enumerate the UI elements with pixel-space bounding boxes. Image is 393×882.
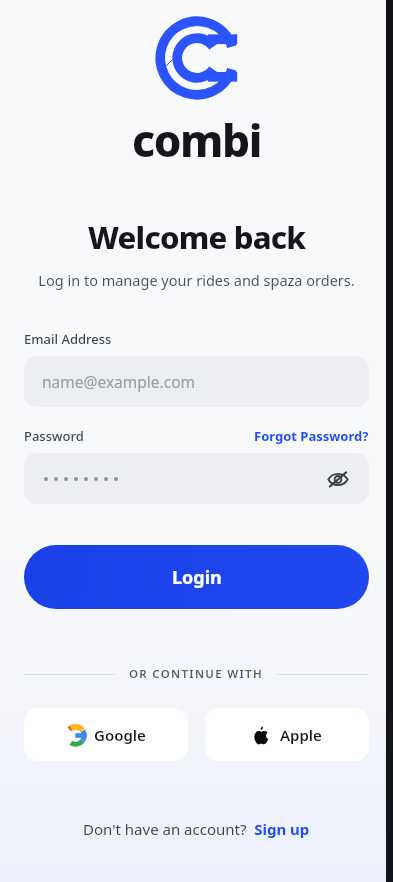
button[interactable]: Show password bbox=[24, 453, 369, 504]
staticText: Login bbox=[172, 565, 222, 590]
staticText: Email Address bbox=[24, 330, 112, 348]
staticText: Forgot Password? bbox=[254, 427, 369, 445]
staticText: OR CONTINUE WITH bbox=[129, 666, 263, 682]
button[interactable]: Don't have an account? Sign up bbox=[83, 819, 310, 839]
button[interactable]: Google bbox=[24, 708, 188, 761]
button[interactable]: name@example.com bbox=[24, 356, 369, 407]
staticText: combi bbox=[132, 110, 262, 170]
staticText: Welcome back bbox=[88, 216, 306, 258]
staticText: Apple bbox=[280, 725, 322, 745]
staticText: Password bbox=[24, 427, 84, 445]
button[interactable]: Apple bbox=[205, 708, 369, 761]
staticText: name@example.com bbox=[42, 371, 196, 392]
button[interactable]: Show password bbox=[321, 462, 355, 496]
button[interactable]: Login bbox=[24, 545, 369, 609]
button[interactable]: Forgot Password? bbox=[254, 427, 369, 445]
staticText: Don't have an account? Sign up bbox=[83, 819, 310, 839]
staticText: Log in to manage your rides and spaza or… bbox=[38, 270, 355, 290]
staticText: Google bbox=[94, 725, 146, 745]
